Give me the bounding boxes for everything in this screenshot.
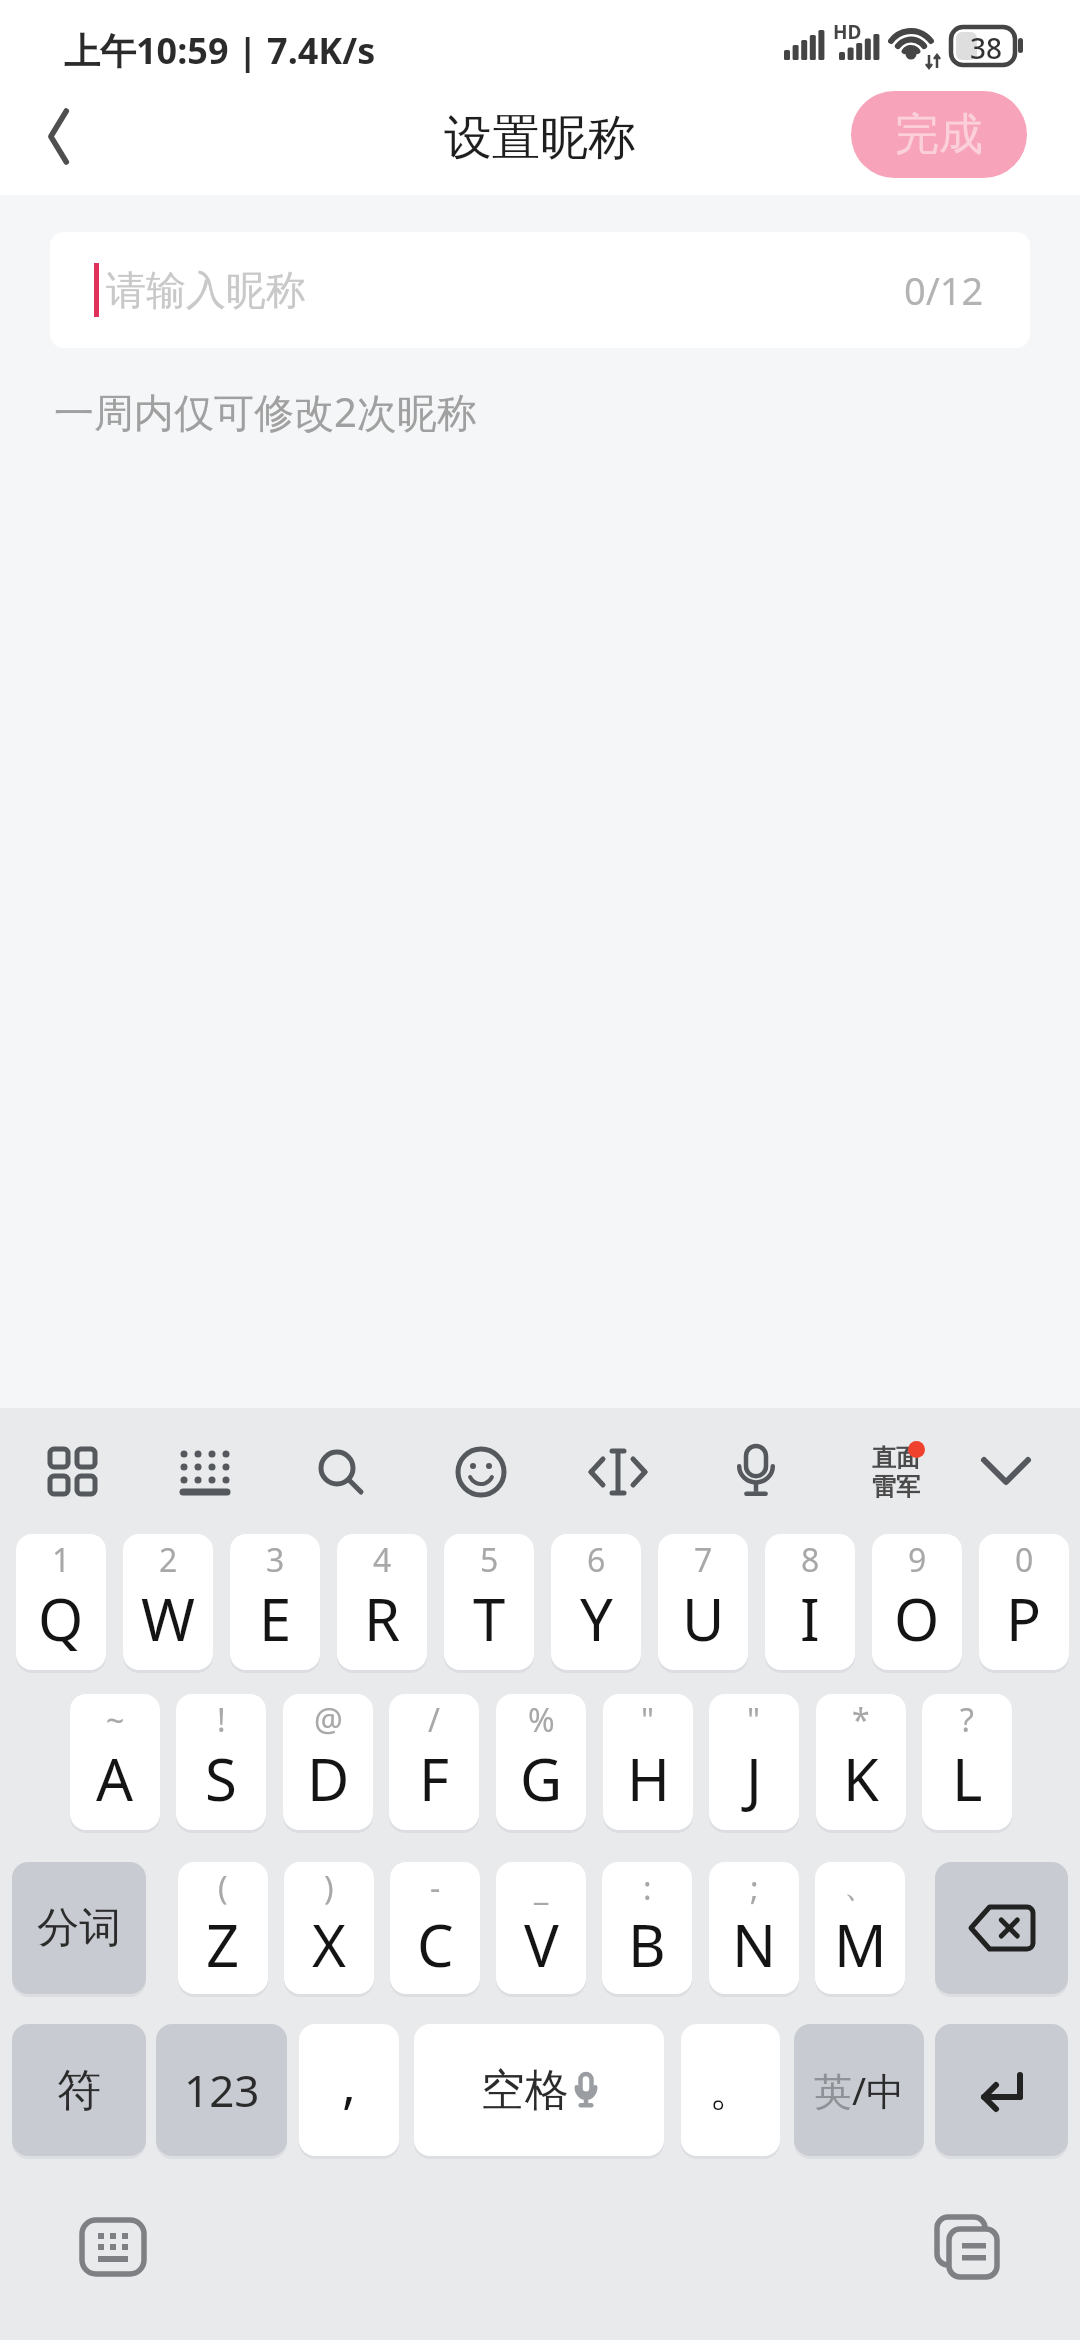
button[interactable]: 123 [156, 2024, 287, 2156]
button[interactable] [33, 1432, 113, 1512]
staticText: X [312, 1905, 346, 1984]
button[interactable]: 8 [765, 1534, 855, 1670]
button[interactable]: 。 [681, 2024, 780, 2156]
staticText: 英/中 [814, 2064, 905, 2116]
staticText: ) [324, 1866, 334, 1910]
staticText: HD [833, 19, 862, 45]
button[interactable]: 请输入昵称 [50, 232, 1030, 348]
button[interactable]: 英/中 [794, 2024, 924, 2156]
button[interactable]: 9 [872, 1534, 962, 1670]
staticText: 符 [57, 2063, 101, 2118]
staticText: 上午10:59 | 7.4K/s [64, 26, 376, 75]
staticText: J [746, 1739, 762, 1818]
button[interactable]: ( [178, 1862, 268, 1994]
button[interactable] [935, 1862, 1068, 1994]
button[interactable]: 0 [979, 1534, 1069, 1670]
staticText: 3 [266, 1538, 285, 1582]
staticText: % [528, 1698, 555, 1742]
staticText: R [364, 1579, 401, 1658]
staticText: " [641, 1698, 655, 1742]
staticText: P [1006, 1579, 1042, 1658]
button[interactable]: 直面 雷军 [856, 1432, 936, 1512]
staticText: Y [580, 1579, 613, 1658]
button[interactable]: 2 [123, 1534, 213, 1670]
staticText: ~ [106, 1698, 125, 1742]
button[interactable]: 4 [337, 1534, 427, 1670]
button[interactable] [24, 94, 94, 179]
button[interactable]: 3 [230, 1534, 320, 1670]
staticText: - [430, 1866, 441, 1910]
staticText: 空格 [481, 2063, 569, 2118]
staticText: N [732, 1905, 777, 1984]
button[interactable] [966, 1432, 1046, 1512]
button[interactable]: 符 [12, 2024, 146, 2156]
button[interactable]: * [816, 1694, 906, 1830]
staticText: 完成 [895, 107, 983, 162]
staticText: ; [750, 1866, 759, 1910]
button[interactable]: 6 [551, 1534, 641, 1670]
staticText: ( [218, 1866, 228, 1910]
button[interactable]: - [390, 1862, 480, 1994]
staticText: _ [534, 1866, 549, 1910]
staticText: O [894, 1579, 940, 1658]
staticText: 5 [480, 1538, 499, 1582]
staticText: A [96, 1739, 134, 1818]
button[interactable] [80, 2218, 146, 2276]
button[interactable]: 完成 [851, 91, 1027, 178]
staticText: T [473, 1579, 506, 1658]
button[interactable]: 分词 [12, 1862, 146, 1994]
button[interactable]: % [496, 1694, 586, 1830]
staticText: 6 [587, 1538, 606, 1582]
staticText: M [834, 1905, 887, 1984]
button[interactable]: ! [176, 1694, 266, 1830]
staticText: 123 [184, 2060, 260, 2120]
staticText: F [419, 1739, 450, 1818]
button[interactable]: ; [709, 1862, 799, 1994]
button[interactable]: : [602, 1862, 692, 1994]
staticText: E [259, 1579, 292, 1658]
button[interactable]: , [299, 2024, 399, 2156]
staticText: 、 [844, 1866, 876, 1906]
button[interactable]: ~ [70, 1694, 160, 1830]
button[interactable] [165, 1432, 245, 1512]
button[interactable]: / [389, 1694, 479, 1830]
staticText: 。 [709, 2063, 753, 2118]
button[interactable]: 空格 [414, 2024, 664, 2156]
button[interactable]: 5 [444, 1534, 534, 1670]
staticText: / [428, 1698, 440, 1742]
button[interactable] [716, 1432, 796, 1512]
button[interactable] [935, 2024, 1068, 2156]
staticText: C [417, 1905, 454, 1984]
button[interactable]: @ [283, 1694, 373, 1830]
button[interactable]: ? [922, 1694, 1012, 1830]
staticText: 1 [52, 1538, 71, 1582]
button[interactable]: _ [496, 1862, 586, 1994]
button[interactable] [441, 1432, 521, 1512]
staticText: 请输入昵称 [106, 265, 306, 315]
button[interactable] [934, 2214, 1000, 2280]
staticText: 9 [908, 1538, 927, 1582]
staticText: 0/12 [904, 264, 984, 316]
staticText: 分词 [37, 1902, 121, 1955]
staticText: @ [314, 1698, 343, 1742]
staticText: 7 [694, 1538, 713, 1582]
staticText: W [141, 1579, 195, 1658]
staticText: 一周内仅可修改2次昵称 [54, 384, 477, 439]
staticText: L [952, 1739, 983, 1818]
staticText: , [342, 2047, 356, 2118]
staticText: 4 [373, 1538, 392, 1582]
staticText: U [682, 1579, 725, 1658]
button[interactable] [578, 1432, 658, 1512]
staticText: K [843, 1739, 879, 1818]
staticText: 0 [1015, 1538, 1034, 1582]
button[interactable]: " [603, 1694, 693, 1830]
staticText: G [520, 1739, 563, 1818]
button[interactable] [301, 1432, 381, 1512]
staticText: S [205, 1739, 237, 1818]
button[interactable]: 7 [658, 1534, 748, 1670]
staticText: 8 [801, 1538, 820, 1582]
button[interactable]: 1 [16, 1534, 106, 1670]
button[interactable]: " [709, 1694, 799, 1830]
button[interactable]: ) [284, 1862, 374, 1994]
button[interactable]: 、 [815, 1862, 905, 1994]
